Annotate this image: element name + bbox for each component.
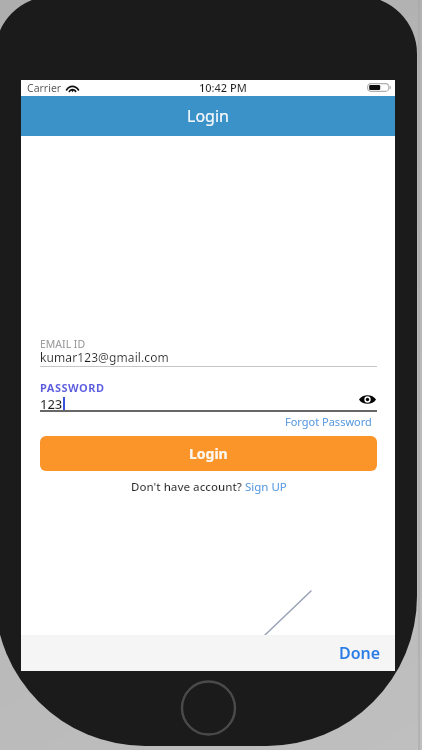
staticText: kumar123@gmail.com	[40, 349, 169, 365]
button[interactable]: Done	[325, 642, 395, 664]
staticText: Sign UP	[245, 479, 287, 495]
staticText: 123	[40, 395, 63, 413]
button[interactable]: Show password	[357, 389, 377, 409]
staticText: PASSWORD	[40, 380, 105, 395]
staticText: Done	[339, 642, 381, 664]
staticText: Carrier	[27, 81, 62, 95]
staticText: EMAIL ID	[40, 337, 86, 351]
staticText: Login	[187, 105, 229, 127]
button[interactable]: Sign UP	[245, 479, 287, 495]
staticText: Don't have account?	[131, 479, 245, 495]
staticText: Forgot Password	[285, 414, 372, 429]
button[interactable]: Login	[40, 436, 377, 471]
staticText: Login	[189, 444, 228, 463]
staticText: 10:42 PM	[199, 80, 247, 95]
button[interactable]: Forgot Password	[285, 414, 377, 429]
